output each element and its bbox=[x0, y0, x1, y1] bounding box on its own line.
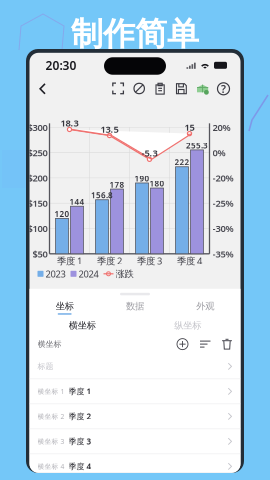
button[interactable]: Save bbox=[173, 81, 189, 97]
button[interactable]: 外观 bbox=[170, 298, 240, 317]
staticText: $150 bbox=[27, 197, 47, 209]
staticText: 横坐标 2 bbox=[37, 412, 64, 421]
staticText: $200 bbox=[27, 172, 47, 184]
button[interactable]: 坐标 bbox=[29, 298, 100, 317]
button[interactable]: Full screen bbox=[110, 81, 126, 97]
staticText: 季度 4 bbox=[177, 255, 202, 267]
staticText: 255.3 bbox=[186, 140, 208, 151]
staticText: 制作简单 bbox=[71, 14, 199, 54]
staticText: 2023 bbox=[45, 268, 65, 280]
staticText: 178 bbox=[109, 179, 124, 190]
staticText: 涨跌 bbox=[115, 268, 133, 280]
staticText: 季度 3 bbox=[137, 255, 162, 267]
button[interactable]: Theme bbox=[131, 81, 147, 97]
staticText: 数据 bbox=[126, 300, 144, 312]
staticText: $300 bbox=[27, 121, 47, 133]
button[interactable]: 横坐标 3 bbox=[29, 429, 240, 454]
staticText: 横坐标 bbox=[37, 339, 61, 349]
staticText: -25% bbox=[212, 197, 233, 209]
staticText: -30% bbox=[212, 222, 233, 235]
staticText: 季度 2 bbox=[97, 255, 122, 267]
staticText: 季度 4 bbox=[68, 461, 91, 472]
staticText: 季度 2 bbox=[68, 411, 91, 422]
button[interactable]: Add bbox=[170, 337, 194, 351]
button[interactable]: 横坐标 4 bbox=[29, 454, 240, 479]
staticText: 坐标 bbox=[56, 300, 74, 312]
button[interactable]: Help bbox=[215, 81, 231, 97]
staticText: 190 bbox=[134, 173, 149, 184]
button[interactable]: Delete bbox=[216, 338, 232, 350]
staticText: 横坐标 4 bbox=[37, 462, 64, 471]
button[interactable]: Sort bbox=[194, 338, 216, 350]
staticText: 季度 1 bbox=[68, 386, 91, 397]
staticText: 季度 1 bbox=[57, 255, 82, 267]
staticText: -20% bbox=[212, 172, 233, 184]
staticText: 15 bbox=[184, 121, 194, 133]
button[interactable]: 数据 bbox=[100, 298, 170, 317]
staticText: ? bbox=[221, 82, 226, 96]
staticText: 横坐标 3 bbox=[37, 437, 64, 446]
staticText: 144 bbox=[69, 196, 84, 207]
staticText: 标题 bbox=[37, 361, 53, 371]
staticText: 20% bbox=[212, 121, 230, 133]
staticText: -5.3 bbox=[141, 147, 157, 159]
button[interactable]: Back bbox=[29, 79, 55, 99]
button[interactable]: 横坐标 1 bbox=[29, 379, 240, 404]
staticText: 13.5 bbox=[100, 123, 118, 135]
staticText: 156.8 bbox=[91, 190, 113, 200]
button[interactable]: Clipboard bbox=[152, 81, 168, 97]
button[interactable]: 标题 bbox=[29, 354, 240, 379]
button[interactable]: 横坐标 bbox=[29, 317, 135, 334]
staticText: 2024 bbox=[78, 268, 98, 280]
staticText: 20:30 bbox=[45, 57, 76, 73]
button[interactable]: Templates bbox=[194, 81, 210, 97]
staticText: 季度 3 bbox=[68, 436, 91, 447]
staticText: 横坐标 bbox=[69, 320, 96, 331]
staticText: 222 bbox=[174, 157, 189, 168]
staticText: $100 bbox=[27, 222, 47, 235]
staticText: $50 bbox=[32, 248, 47, 260]
staticText: 180 bbox=[149, 178, 164, 189]
staticText: 横坐标 1 bbox=[37, 387, 64, 396]
staticText: 外观 bbox=[196, 300, 214, 312]
button[interactable]: 纵坐标 bbox=[135, 317, 240, 334]
staticText: 纵坐标 bbox=[174, 320, 201, 331]
button[interactable]: 横坐标 2 bbox=[29, 404, 240, 429]
staticText: 120 bbox=[54, 209, 69, 219]
staticText: -35% bbox=[212, 248, 233, 260]
staticText: 0% bbox=[212, 146, 225, 159]
staticText: 18.3 bbox=[60, 117, 78, 129]
staticText: $250 bbox=[27, 146, 47, 159]
